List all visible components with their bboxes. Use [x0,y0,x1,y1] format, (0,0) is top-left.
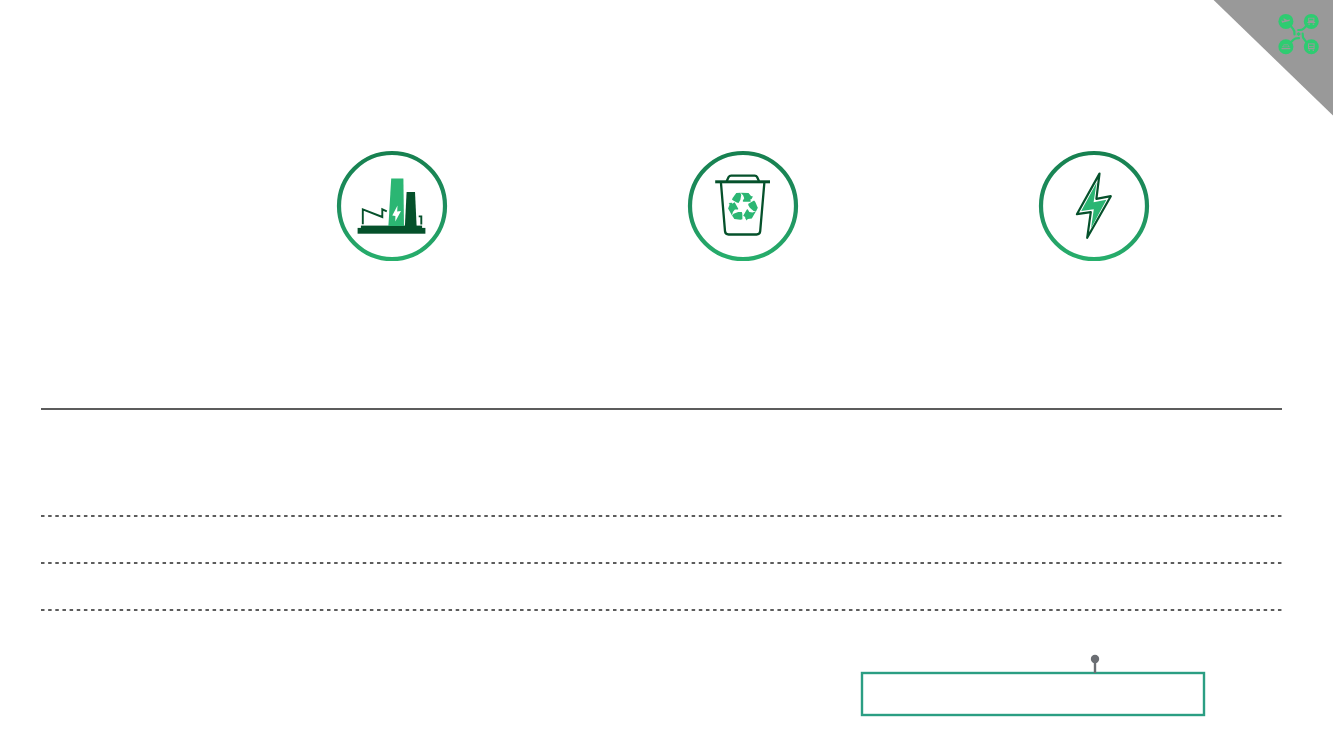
button[interactable]: Power plant [336,150,448,262]
button[interactable]: Input field [861,672,1205,716]
button[interactable]: Energy [1038,150,1150,262]
button[interactable]: Transport network logo [1214,0,1333,117]
button[interactable]: Recycling [687,150,799,262]
